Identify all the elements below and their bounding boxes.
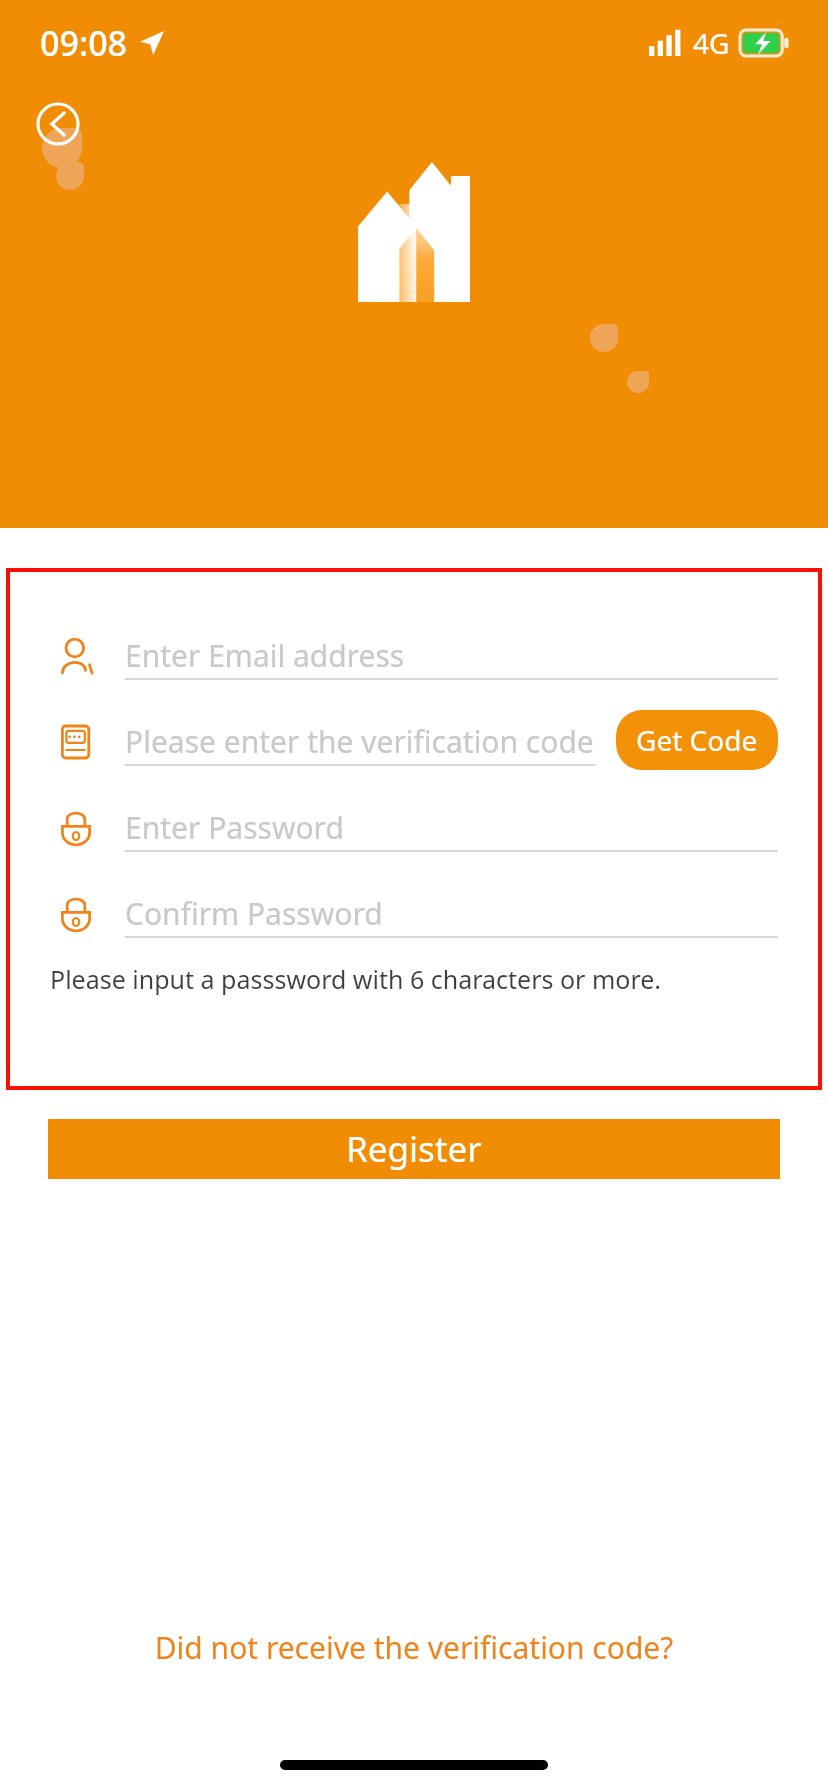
button[interactable]: Did not receive the verification code?	[0, 1617, 828, 1678]
staticText: Enter Password	[125, 807, 344, 848]
button[interactable]: Enter Password	[8, 796, 820, 860]
staticText: Enter Email address	[125, 635, 405, 676]
button[interactable]: Register	[48, 1119, 780, 1179]
button[interactable]: Back	[36, 102, 80, 146]
button[interactable]: Get Code	[616, 710, 778, 770]
staticText: Register	[346, 1125, 482, 1173]
staticText: Get Code	[636, 721, 758, 759]
staticText: Confirm Password	[125, 893, 383, 934]
button[interactable]: Please enter the verification code	[8, 710, 820, 774]
staticText: 09:08	[40, 20, 128, 66]
button[interactable]: Enter Email address	[8, 624, 820, 688]
staticText: Please enter the verification code	[125, 721, 594, 762]
button[interactable]: Confirm Password	[8, 882, 820, 946]
staticText: 4G	[693, 24, 730, 62]
staticText: Please input a passsword with 6 characte…	[50, 962, 662, 996]
